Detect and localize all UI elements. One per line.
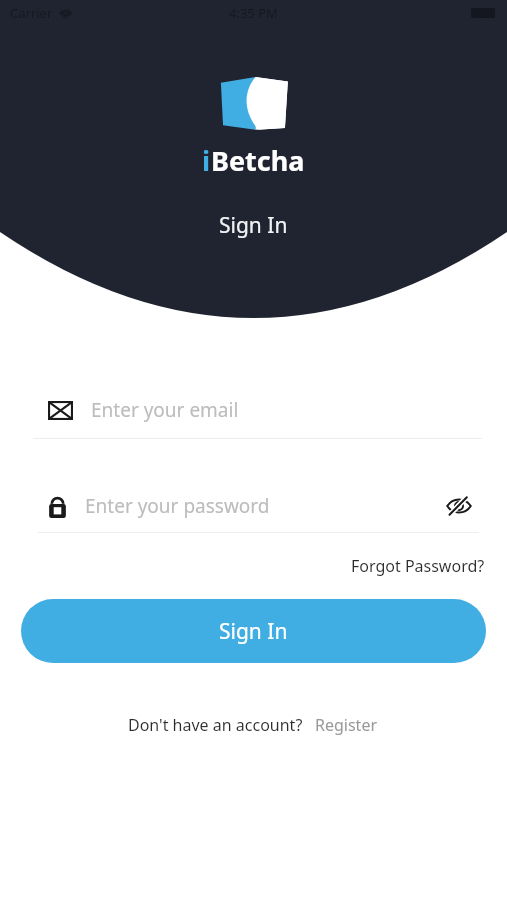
button[interactable]: Register [313,710,380,740]
staticText: 4:35 PM [229,4,278,22]
button[interactable]: Enter your password [0,480,507,532]
staticText: Don't have an account? [128,714,303,736]
staticText: Betcha [211,142,305,179]
staticText: Sign In [219,617,288,646]
staticText: Enter your password [85,493,439,519]
staticText: Enter your email [91,397,239,423]
staticText: Carrier [10,4,53,22]
staticText: Sign In [219,211,288,240]
button[interactable]: Enter your email [0,382,507,438]
staticText: i [202,142,211,179]
button[interactable]: Sign In [21,599,486,663]
button[interactable]: Forgot Password? [349,551,487,581]
button[interactable]: Show password [439,486,479,526]
